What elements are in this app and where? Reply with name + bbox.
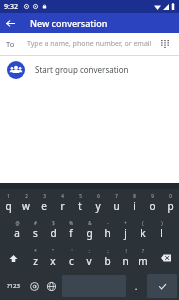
staticText: ?123 (7, 282, 20, 290)
button[interactable]: ? (134, 244, 152, 272)
button[interactable]: " (44, 244, 62, 272)
staticText: v (86, 254, 92, 268)
button[interactable]: ; (98, 244, 116, 272)
button[interactable]: 8 (125, 189, 143, 216)
staticText: n (122, 254, 129, 268)
staticText: ? (142, 248, 144, 254)
staticText: ' (71, 248, 73, 254)
button[interactable]: . (128, 272, 145, 300)
staticText: f (69, 226, 73, 240)
staticText: u (113, 199, 120, 213)
staticText: Start group conversation (35, 64, 129, 75)
button[interactable]: At sign (26, 272, 43, 300)
staticText: # (34, 220, 37, 226)
button[interactable]: 5 (71, 189, 89, 216)
staticText: 9 (151, 193, 154, 199)
button[interactable]: ?123 (0, 272, 26, 300)
staticText: ; (107, 248, 109, 254)
button[interactable]: Back (0, 13, 20, 33)
staticText: i (133, 199, 136, 213)
staticText: 5 (79, 193, 82, 199)
button[interactable]: ( (134, 216, 152, 244)
button[interactable]: ! (116, 244, 134, 272)
button[interactable]: 4 (53, 189, 71, 216)
button[interactable]: Change language (43, 272, 60, 300)
staticText: * (34, 248, 37, 254)
button[interactable]: $ (44, 216, 62, 244)
button[interactable]: Dialpad (157, 36, 173, 52)
staticText: . (135, 281, 138, 292)
staticText: 8 (133, 193, 136, 199)
staticText: To (6, 39, 15, 49)
staticText: c (69, 254, 74, 268)
staticText: @ (15, 220, 20, 226)
button[interactable]: Backspace (152, 244, 179, 272)
staticText: e (41, 199, 47, 213)
staticText: x (50, 254, 56, 268)
button[interactable]: 7 (107, 189, 125, 216)
staticText: 9:32 (4, 2, 18, 12)
staticText: a (14, 226, 20, 240)
staticText: w (22, 199, 30, 213)
staticText: : (88, 248, 90, 254)
staticText: 4 (61, 193, 64, 199)
staticText: $ (52, 220, 55, 226)
staticText: % (69, 220, 73, 226)
button[interactable]: 2 (17, 189, 35, 216)
staticText: o (149, 199, 156, 213)
button[interactable]: & (80, 216, 98, 244)
button[interactable]: % (62, 216, 80, 244)
button[interactable]: 0 (161, 189, 179, 216)
button[interactable]: : (80, 244, 98, 272)
staticText: ( (142, 220, 144, 226)
button[interactable]: Enter (147, 274, 177, 298)
staticText: 1 (7, 193, 10, 199)
staticText: ) (161, 220, 163, 226)
button[interactable]: Start group conversation (0, 56, 179, 83)
button[interactable]: + (116, 216, 134, 244)
staticText: l (160, 226, 163, 240)
staticText: 7 (115, 193, 118, 199)
button[interactable]: 3 (35, 189, 53, 216)
staticText: g (86, 226, 93, 240)
button[interactable]: ' (62, 244, 80, 272)
button[interactable]: 1 (0, 189, 17, 216)
staticText: r (60, 199, 65, 213)
staticText: d (50, 226, 57, 240)
staticText: 2 (25, 193, 28, 199)
staticText: p (167, 199, 174, 213)
button[interactable]: @ (8, 216, 26, 244)
button[interactable]: ) (152, 216, 170, 244)
staticText: q (5, 199, 12, 213)
staticText: & (88, 220, 92, 226)
staticText: j (124, 226, 127, 240)
button[interactable]: * (26, 244, 44, 272)
staticText: 0 (169, 193, 172, 199)
button[interactable]: 9 (143, 189, 161, 216)
staticText: New conversation (30, 17, 108, 29)
button[interactable]: # (26, 216, 44, 244)
staticText: + (124, 220, 127, 226)
staticText: 3 (43, 193, 46, 199)
staticText: y (95, 199, 101, 213)
staticText: ! (125, 248, 127, 254)
button[interactable]: Shift (0, 244, 26, 272)
button[interactable]: 6 (89, 189, 107, 216)
staticText: b (104, 254, 111, 268)
staticText: h (104, 226, 111, 240)
staticText: - (107, 220, 109, 226)
staticText: s (33, 226, 38, 240)
staticText: t (78, 199, 82, 213)
staticText: z (33, 254, 38, 268)
staticText: k (140, 226, 146, 240)
staticText: " (52, 248, 54, 254)
staticText: 6 (97, 193, 100, 199)
button[interactable]: - (98, 216, 116, 244)
staticText: Type a name, phone number, or email (27, 39, 157, 49)
staticText: m (138, 254, 148, 268)
